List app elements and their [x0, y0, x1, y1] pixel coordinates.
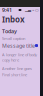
staticText: Inbox [2, 14, 25, 25]
staticText: ▂▄ ⌁ ▭ [25, 8, 39, 12]
staticText: A longer line of body copy here [2, 52, 37, 63]
staticText: Small caption [2, 36, 25, 41]
staticText: 9:41 [2, 6, 12, 14]
staticText: Today [2, 28, 17, 35]
staticText: Another line goes [2, 66, 32, 71]
staticText: Final short line [2, 72, 27, 77]
staticText: Message title [2, 42, 35, 49]
